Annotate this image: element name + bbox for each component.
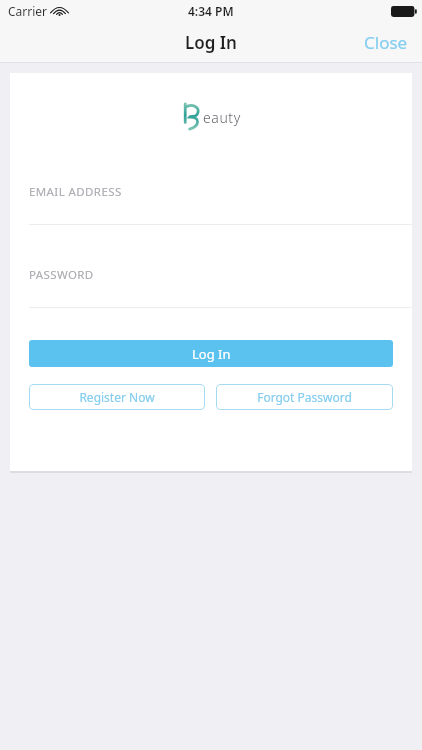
staticText: eauty [203,108,241,127]
button[interactable]: Close [350,23,422,62]
staticText: Log In [192,345,231,363]
staticText: Log In [185,31,237,54]
button[interactable]: Register Now [29,384,205,410]
button[interactable]: EMAIL ADDRESS [10,184,412,225]
button[interactable]: Log In [29,340,393,367]
staticText: EMAIL ADDRESS [29,184,122,200]
staticText: Carrier [8,3,48,19]
staticText: 4:34 PM [188,3,234,19]
staticText: Forgot Password [257,389,352,405]
staticText: Register Now [79,389,155,405]
button[interactable]: PASSWORD [10,267,412,308]
staticText: Close [364,31,408,54]
staticText: PASSWORD [29,267,94,283]
button[interactable]: Forgot Password [216,384,393,410]
other: Beauty logo [182,103,201,130]
